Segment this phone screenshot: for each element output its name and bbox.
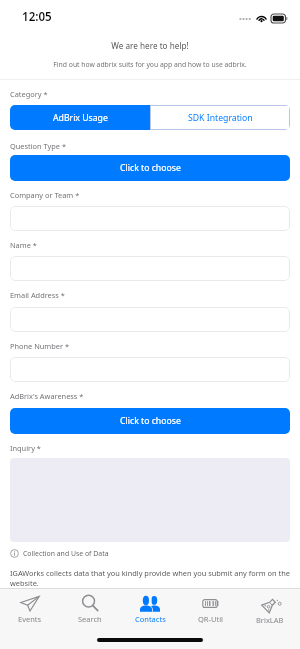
- staticText: Find out how adbrix suits for you app an…: [0, 60, 300, 69]
- button[interactable]: QR-Util: [180, 593, 240, 624]
- other: QR-Util: [201, 595, 219, 612]
- button[interactable]: [10, 307, 290, 332]
- staticText: Category *: [10, 89, 48, 99]
- staticText: Click to choose: [120, 415, 181, 427]
- staticText: AdBrix Usage: [53, 112, 108, 124]
- button[interactable]: Contacts: [120, 593, 180, 624]
- staticText: SDK Integration: [188, 112, 253, 124]
- other: Search: [81, 595, 99, 612]
- staticText: Contacts: [135, 614, 166, 624]
- button[interactable]: Click to choose: [10, 408, 290, 434]
- other: Contacts: [140, 595, 160, 612]
- button[interactable]: SDK Integration: [150, 105, 290, 130]
- staticText: Events: [18, 614, 42, 624]
- staticText: Collection and Use of Data: [23, 549, 109, 558]
- button[interactable]: [10, 256, 290, 281]
- button[interactable]: AdBrix Usage: [10, 105, 150, 130]
- button[interactable]: Events: [0, 593, 60, 624]
- staticText: Click to choose: [120, 162, 181, 174]
- other: Events: [20, 595, 40, 612]
- button[interactable]: Search: [60, 593, 120, 624]
- staticText: AdBrix's Awareness *: [10, 391, 84, 401]
- staticText: Search: [78, 614, 102, 624]
- staticText: BrixLAB: [256, 615, 284, 625]
- button[interactable]: [10, 206, 290, 231]
- button[interactable]: Click to choose: [10, 155, 290, 181]
- staticText: IGAWorks collects data that you kindly p…: [10, 568, 290, 588]
- staticText: Question Type *: [10, 141, 67, 151]
- staticText: Email Address *: [10, 290, 65, 300]
- staticText: Phone Number *: [10, 341, 70, 351]
- other: BrixLAB: [261, 595, 280, 613]
- staticText: QR-Util: [198, 614, 223, 624]
- button[interactable]: [10, 357, 290, 382]
- staticText: Name *: [10, 240, 37, 250]
- staticText: We are here to help!: [0, 40, 300, 51]
- button[interactable]: BrixLAB: [240, 593, 300, 625]
- staticText: Inquiry *: [10, 443, 41, 453]
- staticText: 12:05: [22, 9, 52, 25]
- staticText: Company or Team *: [10, 190, 80, 200]
